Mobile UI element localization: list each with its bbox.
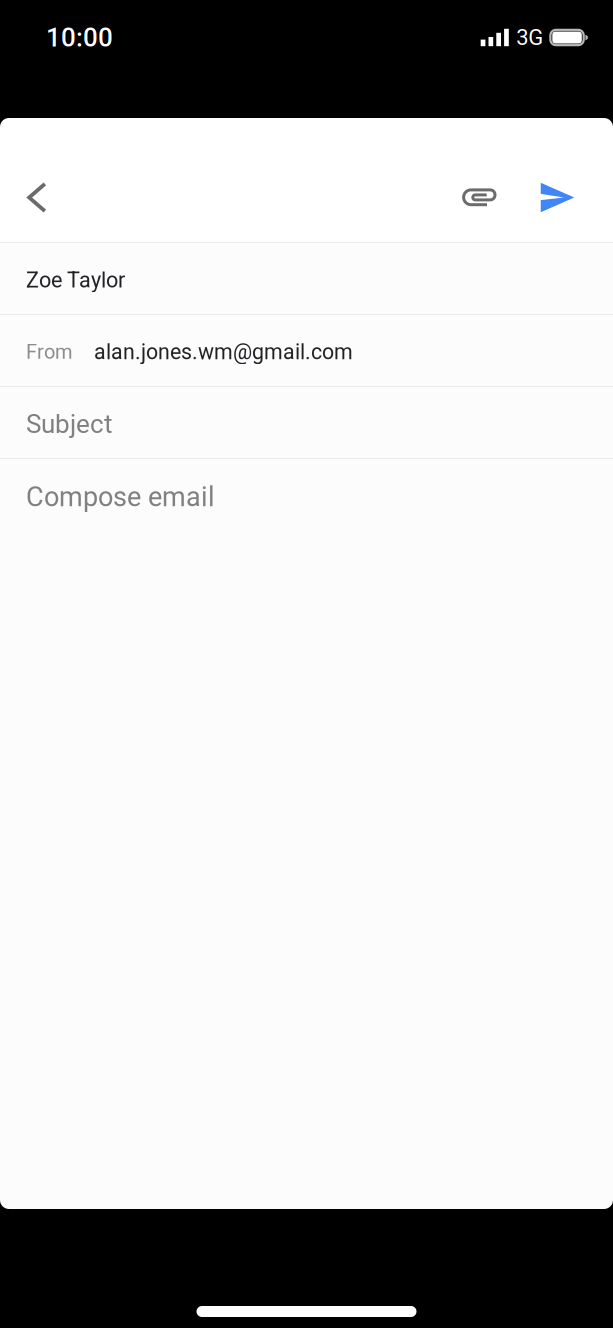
button[interactable]: Back <box>6 161 68 233</box>
staticText: alan.jones.wm@gmail.com <box>94 339 353 364</box>
button[interactable]: Zoe Taylor <box>0 243 613 315</box>
button[interactable]: Subject <box>0 387 613 459</box>
button[interactable]: From <box>0 315 613 387</box>
button[interactable]: Send <box>526 161 588 233</box>
button[interactable]: Compose email <box>0 459 613 531</box>
button[interactable]: Attach file <box>449 161 509 233</box>
staticText: 3G <box>516 25 543 50</box>
staticText: 10:00 <box>46 22 113 53</box>
staticText: Subject <box>26 409 113 439</box>
staticText: Zoe Taylor <box>26 267 125 293</box>
staticText: Compose email <box>26 481 215 513</box>
staticText: From <box>26 340 73 364</box>
